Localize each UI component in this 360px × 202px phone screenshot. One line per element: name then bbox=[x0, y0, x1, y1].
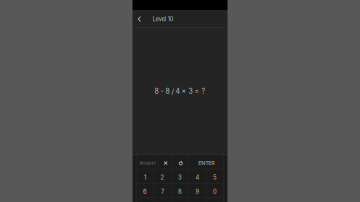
button[interactable]: 4 bbox=[189, 169, 206, 183]
staticText: 2 bbox=[160, 174, 164, 181]
button[interactable]: 9 bbox=[189, 183, 206, 197]
staticText: 0 bbox=[213, 188, 217, 195]
button[interactable]: Answer bbox=[136, 155, 158, 169]
staticText: 5 bbox=[213, 174, 217, 181]
button[interactable]: 7 bbox=[154, 183, 171, 197]
button[interactable]: Reset bbox=[173, 155, 188, 169]
staticText: 8 bbox=[178, 188, 182, 195]
staticText: ENTER bbox=[198, 160, 214, 166]
button[interactable]: 5 bbox=[206, 169, 224, 183]
staticText: 6 bbox=[143, 188, 147, 195]
staticText: 4 bbox=[195, 174, 199, 181]
button[interactable]: 0 bbox=[206, 183, 224, 197]
button[interactable]: Back bbox=[132, 10, 146, 28]
staticText: Answer bbox=[139, 160, 156, 166]
staticText: 9 bbox=[195, 188, 199, 195]
button[interactable]: ENTER bbox=[189, 155, 224, 169]
button[interactable]: Clear bbox=[159, 155, 173, 169]
staticText: 7 bbox=[161, 188, 164, 195]
button[interactable]: 1 bbox=[136, 169, 153, 183]
button[interactable]: 3 bbox=[171, 169, 188, 183]
button[interactable]: 2 bbox=[154, 169, 171, 183]
staticText: 3 bbox=[178, 174, 182, 181]
staticText: 8 - 8 / 4 × 3 = ? bbox=[154, 87, 205, 95]
staticText: 1 bbox=[144, 174, 146, 181]
button[interactable]: 6 bbox=[136, 183, 153, 197]
button[interactable]: 8 bbox=[171, 183, 188, 197]
staticText: Level 10 bbox=[153, 16, 174, 22]
